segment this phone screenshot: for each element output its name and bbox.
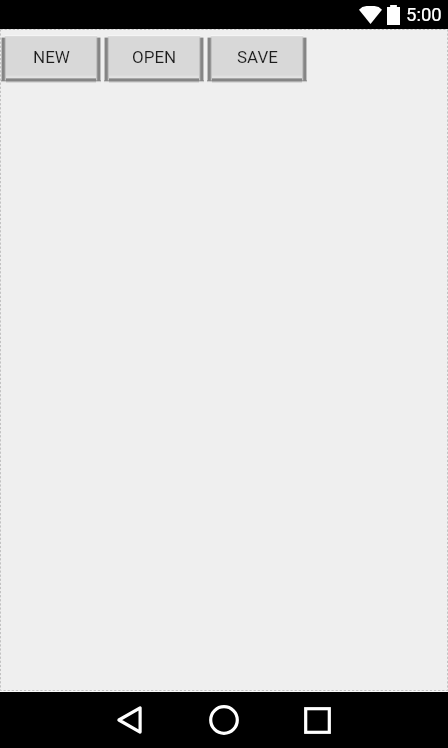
button[interactable]: Back	[93, 692, 165, 748]
staticText: 5:00	[406, 4, 442, 26]
button[interactable]: NEW	[1, 35, 101, 83]
staticText: SAVE	[237, 47, 278, 67]
button[interactable]: OPEN	[104, 35, 204, 83]
button[interactable]: Home	[188, 692, 260, 748]
staticText: NEW	[33, 47, 70, 67]
staticText: OPEN	[132, 47, 177, 67]
button[interactable]: SAVE	[207, 35, 307, 83]
button[interactable]: Recents	[281, 692, 353, 748]
